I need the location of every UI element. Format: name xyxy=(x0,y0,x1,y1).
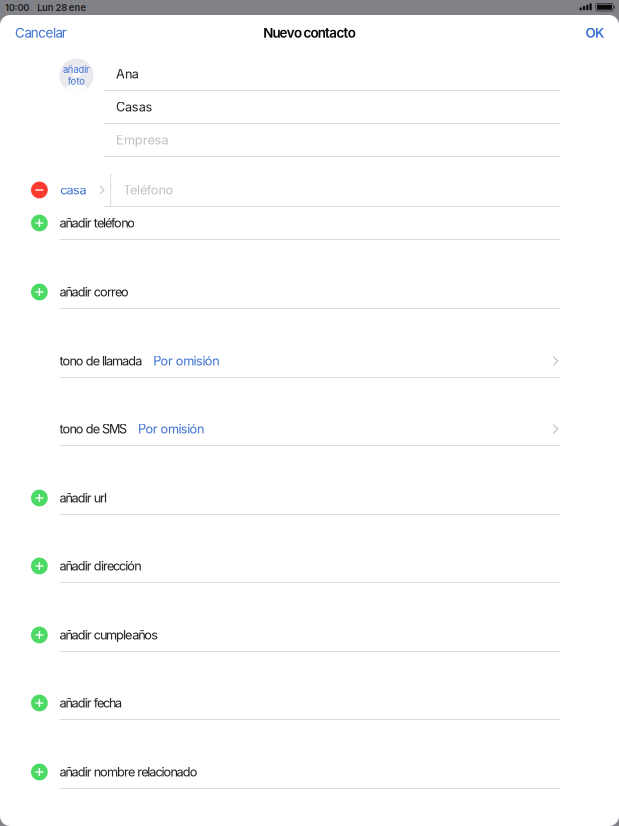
button[interactable]: Añadir foto xyxy=(59,58,93,92)
staticText: añadir nombre relacionado xyxy=(59,764,198,780)
button[interactable]: añadir nombre relacionado xyxy=(0,756,619,789)
button[interactable]: añadir url xyxy=(0,482,619,515)
staticText: 10:00 xyxy=(5,2,29,13)
button[interactable]: casa xyxy=(60,174,110,206)
staticText: Por omisión xyxy=(138,421,204,437)
button[interactable]: tono de llamada xyxy=(0,345,619,378)
staticText: Nuevo contacto xyxy=(263,25,356,41)
staticText: añadir correo xyxy=(59,284,129,300)
button[interactable]: añadir fecha xyxy=(0,687,619,720)
staticText: añadir xyxy=(63,64,90,75)
staticText: casa xyxy=(60,182,86,198)
button[interactable]: tono de SMS xyxy=(0,413,619,446)
staticText: añadir fecha xyxy=(59,695,122,711)
button[interactable]: añadir dirección xyxy=(0,550,619,583)
staticText: OK xyxy=(585,25,604,41)
staticText: Ana xyxy=(116,66,139,82)
button[interactable]: añadir correo xyxy=(0,276,619,309)
staticText: Lun 28 ene xyxy=(37,2,86,13)
staticText: Por omisión xyxy=(153,353,219,369)
staticText: tono de llamada xyxy=(59,353,142,369)
button[interactable]: OK xyxy=(570,15,619,51)
staticText: Casas xyxy=(116,99,153,115)
staticText: añadir dirección xyxy=(59,558,141,574)
staticText: tono de SMS xyxy=(59,421,127,437)
staticText: Teléfono xyxy=(123,182,173,198)
staticText: Empresa xyxy=(116,132,168,148)
staticText: añadir cumpleaños xyxy=(59,627,158,643)
button[interactable]: añadir teléfono xyxy=(0,207,619,240)
staticText: foto xyxy=(68,76,85,87)
button[interactable]: Eliminar teléfono xyxy=(31,182,48,198)
staticText: añadir url xyxy=(59,490,107,506)
staticText: Cancelar xyxy=(15,25,67,41)
button[interactable]: añadir cumpleaños xyxy=(0,619,619,652)
staticText: añadir teléfono xyxy=(59,215,135,231)
button[interactable]: Cancelar xyxy=(0,15,82,51)
